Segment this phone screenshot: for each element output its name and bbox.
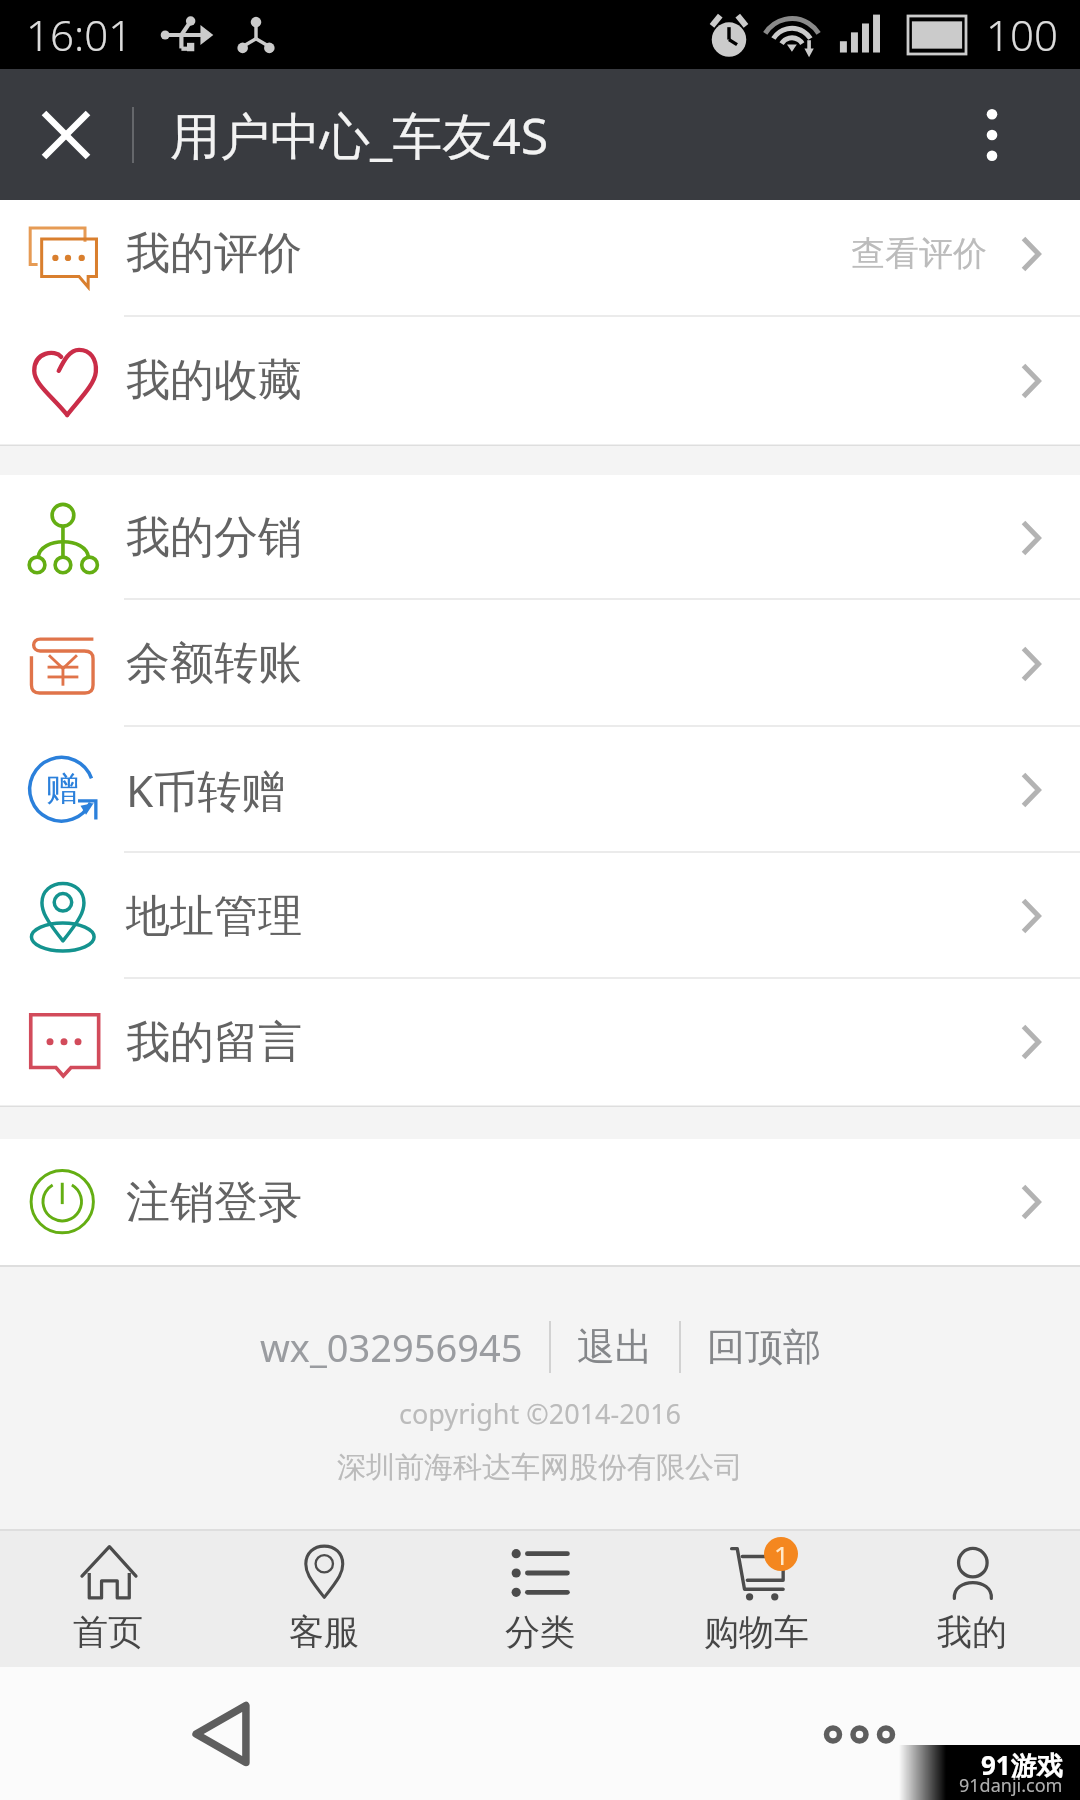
staticText: K币转赠 bbox=[126, 760, 286, 820]
staticText: 用户中心_车友4S bbox=[170, 101, 549, 169]
staticText: 1 bbox=[774, 1537, 789, 1571]
button[interactable]: More options bbox=[904, 69, 1080, 200]
button[interactable]: 我的收藏 bbox=[0, 317, 1080, 444]
button[interactable]: 回顶部 bbox=[707, 1323, 821, 1371]
staticText: 91游戏 bbox=[981, 1747, 1063, 1783]
staticText: 购物车 bbox=[704, 1610, 809, 1654]
staticText: copyright ©2014-2016 bbox=[399, 1395, 682, 1432]
button[interactable]: 分类 bbox=[432, 1529, 648, 1667]
button[interactable]: 退出 bbox=[577, 1323, 653, 1371]
staticText: 分类 bbox=[505, 1610, 575, 1654]
staticText: 91danji.com bbox=[959, 1773, 1063, 1798]
button[interactable]: 1 bbox=[648, 1529, 864, 1667]
button[interactable]: 我的评价 bbox=[0, 200, 1080, 317]
staticText: 客服 bbox=[289, 1610, 359, 1654]
staticText: 100 bbox=[986, 6, 1058, 63]
button[interactable]: 我的留言 bbox=[0, 979, 1080, 1105]
button[interactable]: Recent apps bbox=[794, 1704, 924, 1764]
button[interactable]: 赠 bbox=[0, 727, 1080, 853]
button[interactable]: 地址管理 bbox=[0, 853, 1080, 979]
button[interactable]: Back bbox=[176, 1689, 266, 1779]
button[interactable]: 我的 bbox=[864, 1529, 1080, 1667]
button[interactable]: 首页 bbox=[0, 1529, 216, 1667]
staticText: 我的收藏 bbox=[126, 353, 302, 408]
staticText: 我的分销 bbox=[126, 510, 302, 565]
button[interactable]: 注销登录 bbox=[0, 1139, 1080, 1265]
button[interactable]: 我的分销 bbox=[0, 475, 1080, 600]
staticText: 我的留言 bbox=[126, 1015, 302, 1070]
button[interactable]: 客服 bbox=[216, 1529, 432, 1667]
staticText: 16:01 bbox=[26, 6, 133, 63]
button[interactable]: wx_032956945 bbox=[260, 1321, 523, 1373]
button[interactable]: Close bbox=[0, 69, 132, 200]
staticText: 深圳前海科达车网股份有限公司 bbox=[337, 1449, 743, 1486]
staticText: 赠 bbox=[46, 768, 79, 810]
staticText: 我的 bbox=[937, 1610, 1007, 1654]
staticText: 余额转账 bbox=[126, 636, 302, 691]
staticText: 地址管理 bbox=[126, 889, 302, 944]
staticText: 注销登录 bbox=[126, 1175, 302, 1230]
staticText: 我的评价 bbox=[126, 226, 302, 281]
staticText: 查看评价 bbox=[851, 232, 987, 275]
button[interactable]: 余额转账 bbox=[0, 600, 1080, 727]
staticText: 首页 bbox=[73, 1610, 143, 1654]
